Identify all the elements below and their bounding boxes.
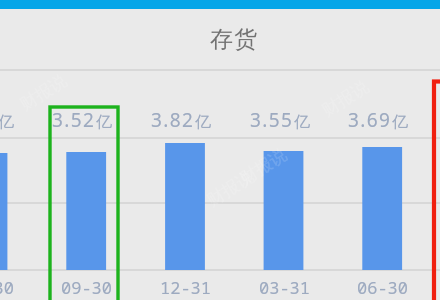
button[interactable]: 存货	[0, 0, 440, 70]
staticText: 存货	[210, 25, 259, 54]
staticText: 12-31	[160, 276, 211, 299]
staticText: 3.82	[151, 107, 195, 133]
staticText: 03-31	[259, 276, 310, 299]
button[interactable]: 3.82	[121, 107, 241, 133]
button[interactable]: 09-30	[26, 276, 146, 300]
button[interactable]: 3.55	[220, 107, 340, 133]
button[interactable]: 12-31	[125, 276, 245, 300]
staticText: 亿	[0, 112, 14, 132]
staticText: 亿	[392, 112, 408, 132]
staticText: 财报说	[236, 144, 291, 189]
staticText: 09-30	[61, 276, 112, 299]
staticText: 06-30	[0, 276, 14, 299]
staticText: 3.55	[250, 107, 294, 133]
staticText: 3.69	[348, 107, 392, 133]
button[interactable]: 3.52	[22, 107, 142, 133]
button[interactable]: 03-31	[224, 276, 344, 300]
staticText: 财报说	[16, 70, 71, 115]
staticText: 亿	[96, 112, 112, 132]
staticText: 亿	[195, 112, 211, 132]
staticText: 财报说	[203, 166, 258, 211]
other: 存货柱状图	[0, 0, 440, 300]
button[interactable]: 06-30	[0, 276, 48, 300]
staticText: 财报说	[318, 76, 373, 121]
staticText: 3.52	[52, 107, 96, 133]
button[interactable]: 3.69	[318, 107, 438, 133]
button[interactable]: 3.40	[0, 107, 44, 133]
staticText: 06-30	[357, 276, 408, 299]
button[interactable]: 06-30	[322, 276, 440, 300]
staticText: 亿	[294, 112, 310, 132]
